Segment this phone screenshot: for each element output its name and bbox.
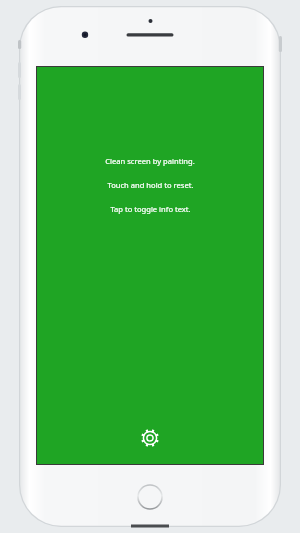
button[interactable]: Settings xyxy=(140,428,160,448)
staticText: Touch and hold to reset. xyxy=(107,180,194,190)
staticText: Tap to toggle info text. xyxy=(110,204,191,214)
staticText: Clean screen by painting. xyxy=(105,156,195,166)
button[interactable]: Clean screen by painting. xyxy=(37,67,263,464)
button[interactable]: Home xyxy=(137,484,163,510)
